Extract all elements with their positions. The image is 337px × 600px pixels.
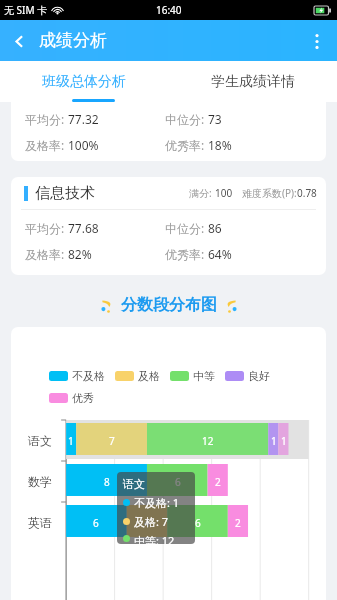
staticText: 6 [195,516,201,530]
staticText: 分数段分布图 [121,295,217,315]
button[interactable]: 班级总体分析 [0,61,168,102]
staticText: 中位分: [165,220,208,236]
staticText: 8 [104,475,110,489]
staticText: 班级总体分析 [42,73,126,91]
button[interactable]: 平均分: [11,102,326,161]
staticText: 中等 [193,369,215,383]
staticText: 64% [208,246,232,262]
staticText: 优秀率: [165,137,208,153]
staticText: 不及格 [72,369,105,383]
button[interactable]: 信息技术 [11,177,326,275]
staticText: 4 [144,516,150,530]
staticText: 平均分: [25,220,68,236]
staticText: 7 [109,434,115,448]
staticText: 16:40 [156,3,182,17]
staticText: 6 [93,516,99,530]
staticText: 0.78 [297,186,317,200]
staticText: 77.68 [68,220,99,236]
staticText: 及格: 7 [134,514,169,529]
staticText: 2 [215,475,221,489]
staticText: 数学 [28,474,52,489]
staticText: 成绩分析 [39,30,107,51]
staticText: 良好 [248,369,270,383]
staticText: 不及格: 1 [134,495,180,510]
staticText: 2 [235,516,241,530]
staticText: 平均分: [25,111,68,127]
staticText: 难度系数(P): [242,186,297,200]
staticText: 及格 [138,369,160,383]
staticText: 满分: [189,186,215,200]
button[interactable]: Back [0,22,38,60]
staticText: 及格率: [25,246,68,262]
staticText: 中位分: [165,111,208,127]
staticText: 73 [208,111,222,127]
staticText: 1 [271,434,277,448]
staticText: 中等: 12 [134,533,175,544]
staticText: 86 [208,220,222,236]
staticText: 12 [202,434,214,448]
staticText: 信息技术 [35,184,95,203]
staticText: 82% [68,246,92,262]
staticText: 1 [281,434,287,448]
staticText: 18% [208,137,232,153]
staticText: 77.32 [68,111,99,127]
button[interactable]: More options [297,21,337,61]
staticText: 无 SIM 卡 [4,3,48,17]
staticText: 优秀 [72,391,94,405]
staticText: 100% [68,137,99,153]
staticText: 语文 [123,477,145,491]
staticText: 6 [175,475,181,489]
staticText: 英语 [28,515,52,530]
staticText: 1 [68,434,74,448]
button[interactable]: 学生成绩详情 [168,61,337,102]
staticText: 语文 [28,433,52,448]
staticText: 100 [215,186,233,200]
staticText: 优秀率: [165,246,208,262]
staticText: 及格率: [25,137,68,153]
staticText: 学生成绩详情 [211,73,295,91]
